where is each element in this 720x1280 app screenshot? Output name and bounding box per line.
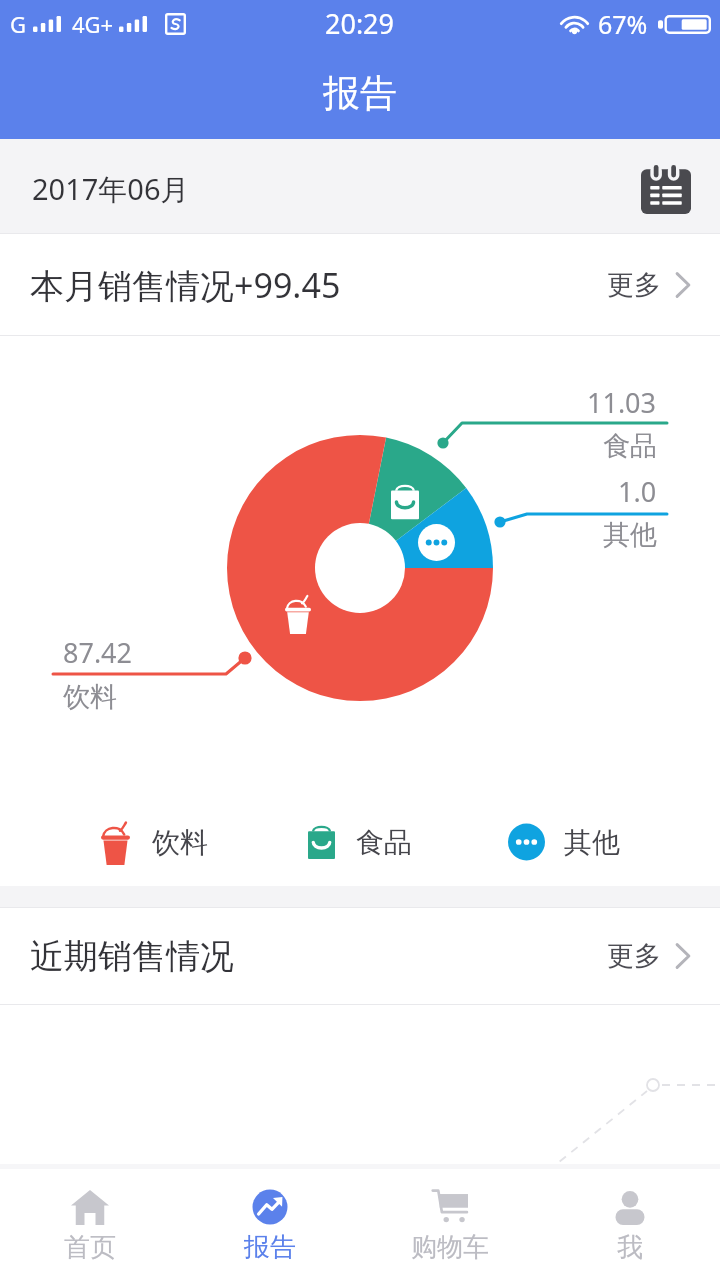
staticText: 更多 <box>607 939 661 973</box>
button[interactable]: 近期销售情况 <box>0 908 720 1004</box>
button[interactable]: 食品 <box>303 813 412 871</box>
staticText: 67% <box>598 7 648 41</box>
staticText: 其他 <box>564 825 620 860</box>
staticText: G <box>10 9 27 39</box>
button[interactable]: 报告 <box>180 1169 360 1280</box>
staticText: 1.0 <box>618 473 657 510</box>
staticText: 首页 <box>64 1231 116 1264</box>
staticText: 更多 <box>607 268 661 302</box>
staticText: 食品 <box>603 429 657 463</box>
staticText: 饮料 <box>152 825 208 860</box>
staticText: 食品 <box>356 825 412 860</box>
staticText: 饮料 <box>63 680 117 714</box>
staticText: 11.03 <box>587 384 657 421</box>
staticText: 2017年06月 <box>32 169 190 209</box>
button[interactable]: 饮料 <box>99 813 208 871</box>
button[interactable]: 首页 <box>0 1169 180 1280</box>
button[interactable]: 我 <box>540 1169 720 1280</box>
button[interactable]: 购物车 <box>360 1169 540 1280</box>
button[interactable]: 本月销售情况+99.45 <box>0 234 720 335</box>
staticText: 报告 <box>244 1231 296 1264</box>
staticText: 购物车 <box>411 1231 489 1264</box>
staticText: 4G+ <box>72 9 114 39</box>
staticText: 87.42 <box>63 634 133 671</box>
staticText: 近期销售情况 <box>30 935 234 978</box>
button[interactable]: 其他 <box>508 813 620 871</box>
staticText: 20:29 <box>325 5 395 42</box>
staticText: 报告 <box>323 70 397 117</box>
staticText: 本月销售情况+99.45 <box>30 262 341 308</box>
staticText: 其他 <box>603 518 657 552</box>
button[interactable]: 选择月份 <box>633 157 698 222</box>
staticText: 我 <box>617 1231 643 1264</box>
